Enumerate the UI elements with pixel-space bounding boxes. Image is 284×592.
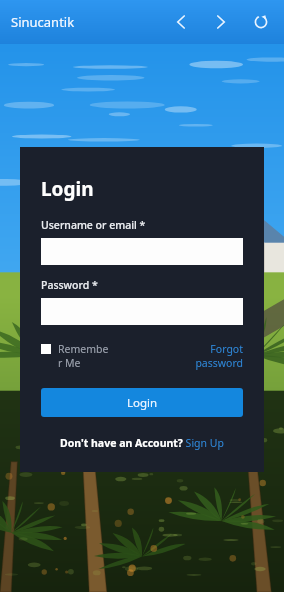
staticText: Forgot password: [191, 342, 243, 370]
staticText: Password *: [41, 278, 98, 292]
button[interactable]: Refresh: [246, 7, 276, 37]
staticText: Remember Me: [58, 342, 112, 370]
button[interactable]: Login: [41, 388, 243, 417]
staticText: Sinucantik: [11, 13, 75, 31]
button[interactable]: Remember Me: [41, 342, 191, 370]
staticText: Login: [41, 176, 94, 202]
button[interactable]: Back: [166, 7, 196, 37]
button[interactable]: Forward: [206, 7, 236, 37]
button[interactable]: Forgot password: [191, 342, 243, 370]
staticText: Login: [127, 395, 158, 411]
staticText: Don't have an Account? Sign Up: [60, 436, 224, 450]
staticText: Username or email *: [41, 218, 146, 232]
button[interactable]: Don't have an Account? Sign Up: [41, 436, 243, 450]
